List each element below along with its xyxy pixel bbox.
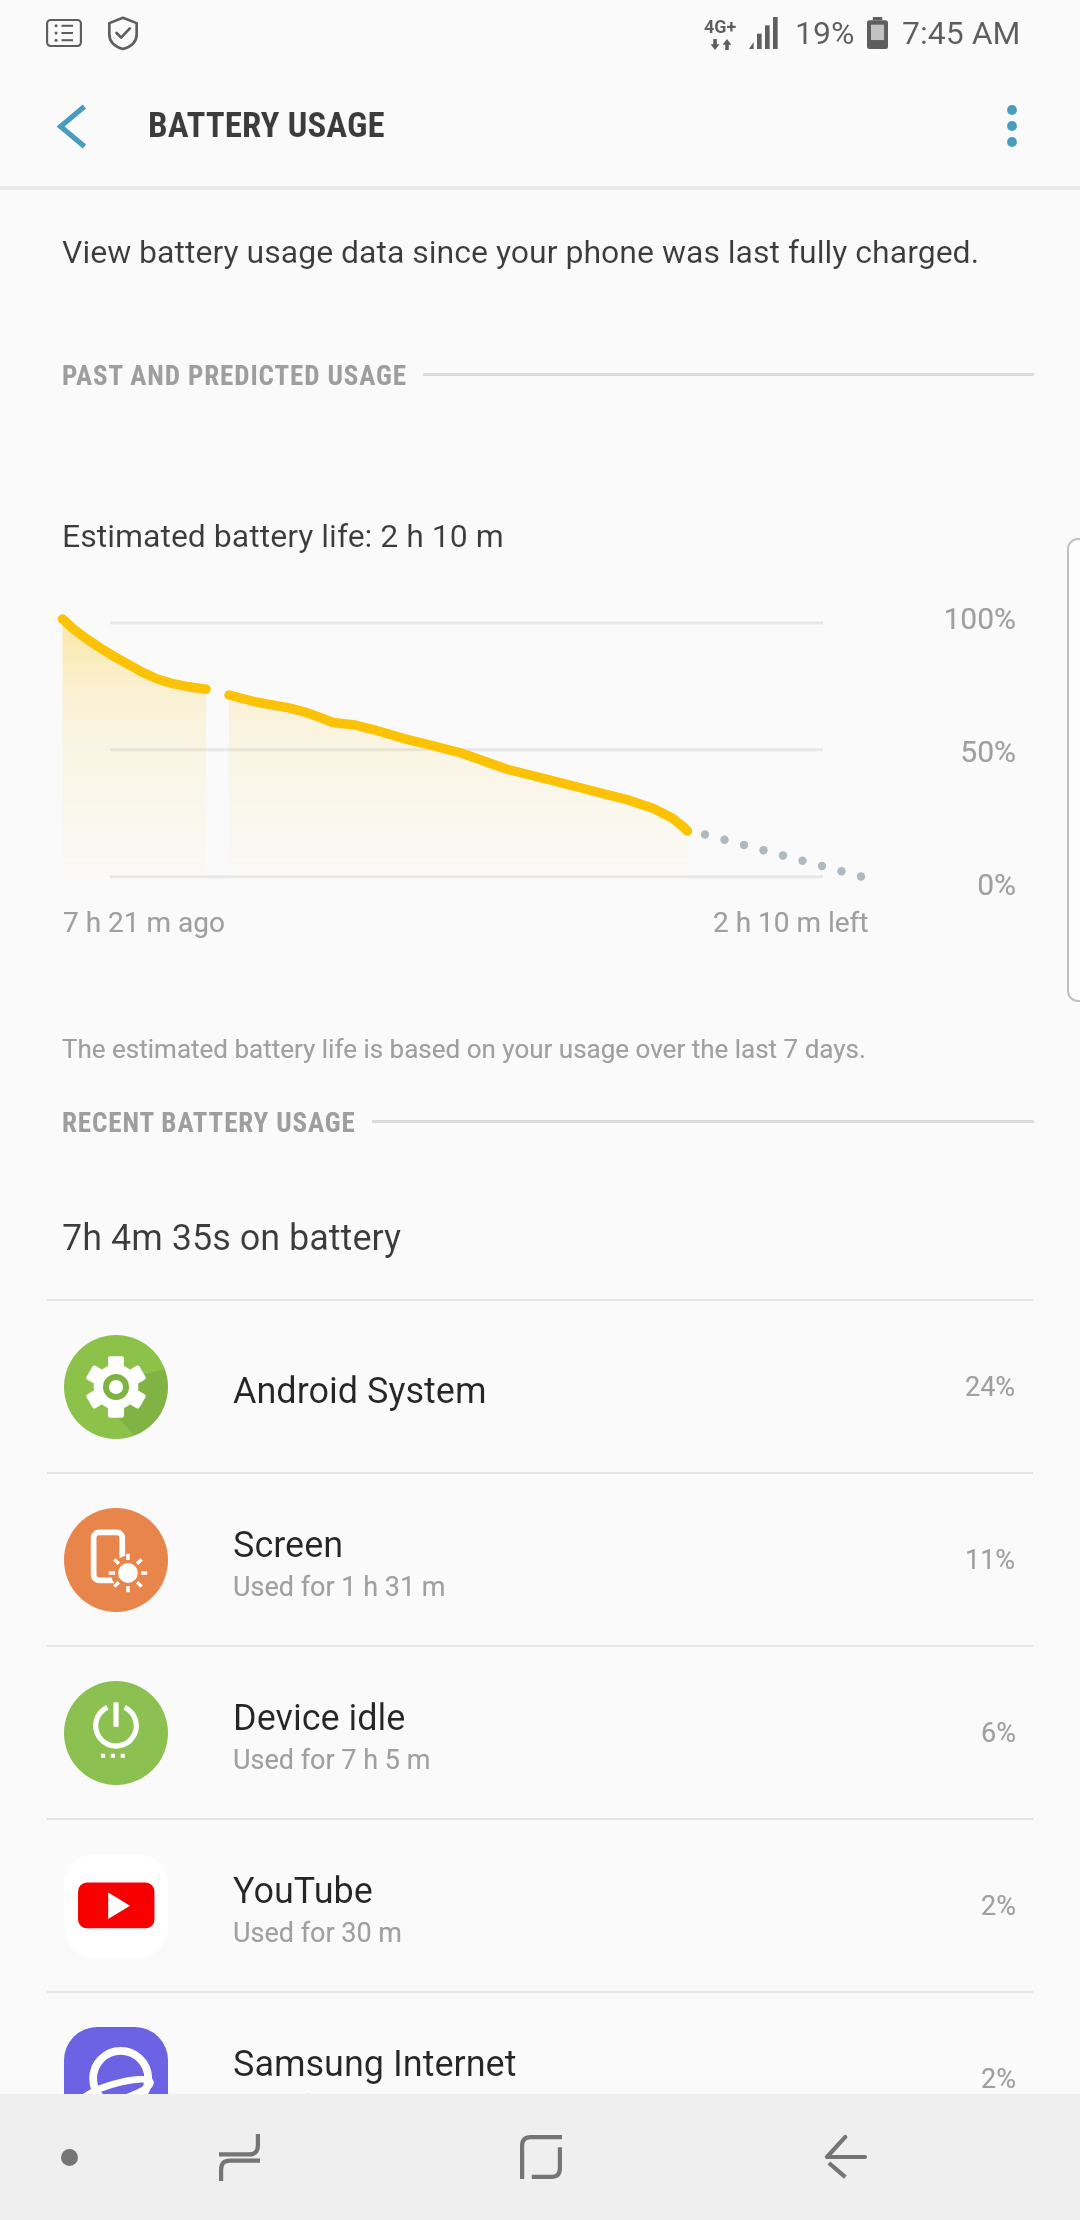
staticText: Samsung Internet bbox=[233, 2043, 517, 2085]
staticText: Screen bbox=[233, 1524, 344, 1566]
staticText: 2 h 10 m left bbox=[713, 906, 869, 939]
staticText: BATTERY USAGE bbox=[148, 105, 385, 146]
staticText: View battery usage data since your phone… bbox=[62, 233, 980, 271]
staticText: 0% bbox=[916, 867, 1016, 902]
staticText: PAST AND PREDICTED USAGE bbox=[62, 360, 407, 392]
button[interactable]: Samsung Internet bbox=[0, 1993, 1080, 2164]
button[interactable]: Android System bbox=[0, 1301, 1080, 1472]
staticText: 7 h 21 m ago bbox=[63, 906, 225, 939]
staticText: Estimated battery life: 2 h 10 m bbox=[62, 517, 504, 555]
staticText: 100% bbox=[916, 601, 1016, 636]
button[interactable]: Back bbox=[784, 2097, 904, 2217]
button[interactable]: YouTube bbox=[0, 1820, 1080, 1991]
staticText: Device idle bbox=[233, 1697, 406, 1739]
staticText: 7h 4m 35s on battery bbox=[62, 1217, 402, 1259]
button[interactable]: Home bbox=[481, 2097, 601, 2217]
staticText: RECENT BATTERY USAGE bbox=[62, 1107, 356, 1139]
button[interactable]: Recent apps bbox=[179, 2097, 299, 2217]
staticText: 2% bbox=[981, 2063, 1016, 2095]
button[interactable]: More options bbox=[966, 80, 1058, 172]
staticText: 7:45 AM bbox=[902, 14, 1021, 52]
staticText: The estimated battery life is based on y… bbox=[62, 1034, 866, 1064]
staticText: 50% bbox=[916, 734, 1016, 769]
staticText: Used for 1 h bbox=[233, 2090, 379, 2122]
staticText: Android System bbox=[233, 1370, 487, 1412]
button[interactable]: Device idle bbox=[0, 1647, 1080, 1818]
staticText: 19% bbox=[795, 14, 855, 52]
staticText: YouTube bbox=[233, 1870, 373, 1912]
staticText: 6% bbox=[981, 1717, 1016, 1749]
staticText: 2% bbox=[981, 1890, 1016, 1922]
button[interactable]: Navigate up bbox=[26, 80, 118, 172]
staticText: Used for 30 m bbox=[233, 1917, 403, 1949]
staticText: 4G+ bbox=[704, 16, 737, 37]
staticText: Used for 1 h 31 m bbox=[233, 1571, 446, 1603]
staticText: Used for 7 h 5 m bbox=[233, 1744, 431, 1776]
staticText: 11% bbox=[965, 1544, 1016, 1576]
button[interactable]: Screen bbox=[0, 1474, 1080, 1645]
button[interactable]: Hide keyboard bbox=[9, 2097, 129, 2217]
staticText: 24% bbox=[965, 1371, 1016, 1403]
